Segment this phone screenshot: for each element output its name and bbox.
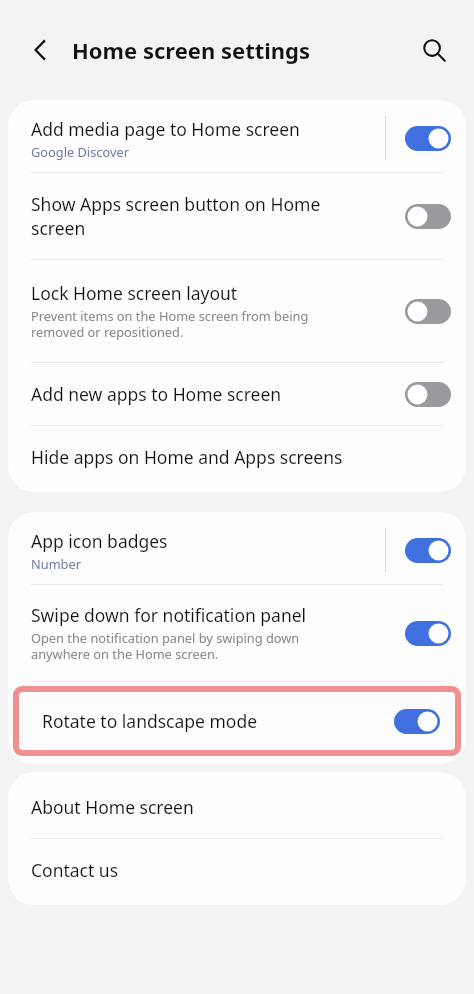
button[interactable]: App icon badges xyxy=(8,516,466,584)
button[interactable]: App icon badges xyxy=(403,536,453,565)
button[interactable]: Show Apps screen button on Home screen xyxy=(8,173,466,259)
button[interactable]: Add media page to Home screen xyxy=(403,124,453,153)
button[interactable]: Lock Home screen layout xyxy=(8,260,466,362)
button[interactable]: Swipe down for notification panel xyxy=(403,619,453,648)
button[interactable]: About Home screen xyxy=(8,776,466,838)
button[interactable]: Search xyxy=(410,26,458,74)
staticText: Lock Home screen layout xyxy=(31,281,238,305)
staticText: Hide apps on Home and Apps screens xyxy=(31,445,343,469)
staticText: Rotate to landscape mode xyxy=(42,709,258,733)
button[interactable]: Swipe down for notification panel xyxy=(8,585,466,681)
staticText: About Home screen xyxy=(31,795,194,819)
staticText: Home screen settings xyxy=(72,35,410,65)
button[interactable]: Rotate to landscape mode xyxy=(19,692,455,750)
staticText: Open the notification panel by swiping d… xyxy=(31,629,300,663)
button[interactable]: Show Apps screen button on Home screen xyxy=(403,202,453,231)
button[interactable]: Back xyxy=(16,26,64,74)
staticText: Add media page to Home screen xyxy=(31,117,300,141)
button[interactable]: Rotate to landscape mode xyxy=(392,707,442,736)
button[interactable]: Add new apps to Home screen xyxy=(403,380,453,409)
staticText: Prevent items on the Home screen from be… xyxy=(31,307,309,341)
staticText: App icon badges xyxy=(31,529,168,553)
button[interactable]: Add media page to Home screen xyxy=(8,104,466,172)
staticText: Contact us xyxy=(31,858,119,882)
staticText: Swipe down for notification panel xyxy=(31,603,307,627)
button[interactable]: Add new apps to Home screen xyxy=(8,363,466,425)
staticText: Add new apps to Home screen xyxy=(31,382,282,406)
staticText: Google Discover xyxy=(31,143,129,160)
staticText: Number xyxy=(31,555,81,572)
staticText: Show Apps screen button on Home screen xyxy=(31,192,321,240)
button[interactable]: Contact us xyxy=(8,839,466,901)
button[interactable]: Lock Home screen layout xyxy=(403,297,453,326)
button[interactable]: Hide apps on Home and Apps screens xyxy=(8,426,466,488)
